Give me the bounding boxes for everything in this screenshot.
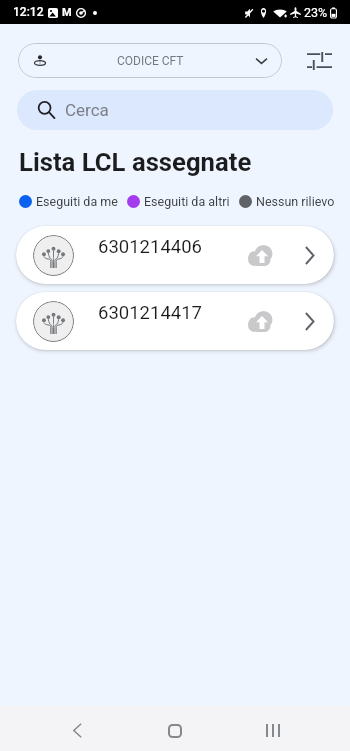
button[interactable]: Filtri	[299, 43, 339, 78]
staticText: 6301214417	[98, 302, 202, 324]
button[interactable]: Back	[53, 706, 101, 751]
button[interactable]: 6301214417	[16, 292, 334, 350]
button[interactable]: Cerca	[17, 90, 333, 130]
button[interactable]: Recents	[249, 706, 297, 751]
staticText: M	[62, 6, 72, 19]
staticText: 6301214406	[98, 236, 202, 258]
staticText: Eseguiti da me	[36, 194, 118, 209]
button[interactable]: Home	[151, 706, 199, 751]
staticText: Nessun rilievo	[256, 194, 335, 209]
staticText: Eseguiti da altri	[144, 194, 230, 209]
staticText: 23%	[304, 5, 328, 20]
staticText: Cerca	[65, 100, 109, 120]
staticText: 12:12	[13, 5, 44, 19]
staticText: Lista LCL assegnate	[19, 147, 252, 177]
staticText: CODICE CFT	[117, 54, 184, 68]
button[interactable]: CODICE CFT	[18, 43, 282, 78]
button[interactable]: 6301214406	[16, 226, 334, 284]
